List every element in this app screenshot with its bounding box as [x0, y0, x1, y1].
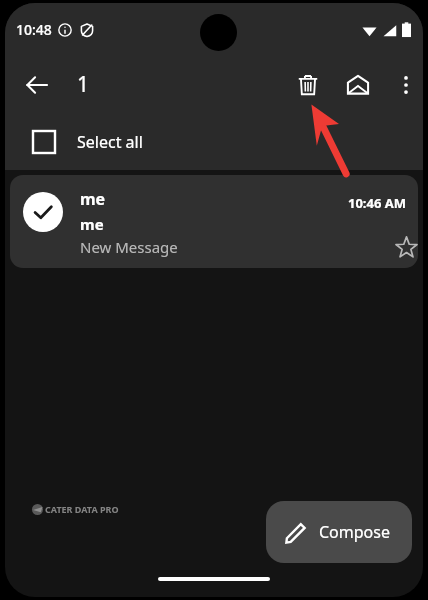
button[interactable]: me: [10, 175, 418, 268]
staticText: Compose: [319, 521, 390, 543]
staticText: Select all: [77, 131, 143, 153]
button[interactable]: Star: [387, 228, 418, 266]
button[interactable]: Back: [13, 61, 61, 109]
button[interactable]: Mark as read: [334, 61, 382, 109]
staticText: 10:48: [16, 20, 52, 39]
staticText: 10:46 AM: [348, 194, 407, 212]
staticText: me: [80, 188, 106, 210]
button[interactable]: Compose: [266, 501, 412, 563]
staticText: 1: [77, 70, 90, 99]
button[interactable]: Select all: [5, 113, 423, 170]
staticText: CATER DATA PRO: [45, 503, 119, 515]
staticText: me: [80, 214, 104, 234]
button[interactable]: Delete: [284, 61, 332, 109]
button[interactable]: More options: [382, 61, 423, 109]
staticText: New Message: [80, 237, 178, 257]
